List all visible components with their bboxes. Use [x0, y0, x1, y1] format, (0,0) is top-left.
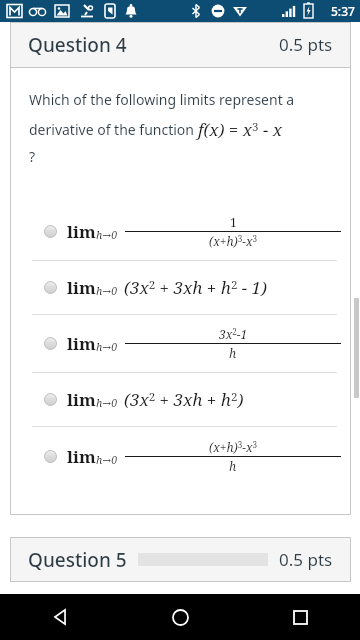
button[interactable]: Recent apps	[240, 594, 360, 640]
button[interactable]: Home	[120, 594, 240, 640]
staticText: (3x2 + 3xh + h2 − 1)	[124, 276, 267, 299]
staticText: f(x) = x3 − x	[198, 118, 282, 141]
button[interactable]: lim	[10, 202, 351, 260]
staticText: h→0	[96, 340, 118, 354]
staticText: lim	[67, 276, 96, 299]
staticText: h	[229, 345, 237, 361]
staticText: h	[229, 458, 237, 474]
staticText: (x+h)3−x3	[209, 439, 258, 455]
button[interactable]: lim	[10, 315, 351, 372]
staticText: lim	[67, 388, 96, 411]
button[interactable]: Back	[0, 594, 120, 640]
staticText: (x+h)3−x3	[209, 233, 258, 249]
staticText: (3x2 + 3xh + h2)	[124, 388, 244, 411]
staticText: h→0	[96, 284, 118, 298]
staticText: h→0	[96, 396, 118, 410]
staticText: 3x2−1	[219, 326, 248, 342]
staticText: ?	[29, 147, 36, 166]
staticText: h→0	[96, 453, 118, 467]
staticText: h→0	[96, 228, 118, 242]
button[interactable]: lim	[10, 373, 351, 426]
button[interactable]: lim	[10, 261, 351, 314]
staticText: 5:37	[331, 3, 355, 19]
staticText: Question 5	[28, 547, 127, 573]
staticText: lim	[67, 220, 96, 243]
staticText: derivative of the function	[29, 120, 198, 139]
button[interactable]: lim	[10, 427, 351, 485]
staticText: Which of the following limits represent …	[29, 90, 295, 109]
staticText: lim	[67, 332, 96, 355]
staticText: 1	[230, 214, 237, 230]
staticText: Question 4	[28, 32, 127, 58]
staticText: lim	[67, 445, 96, 468]
staticText: 0.5 pts	[279, 548, 333, 571]
staticText: 0.5 pts	[279, 33, 333, 56]
